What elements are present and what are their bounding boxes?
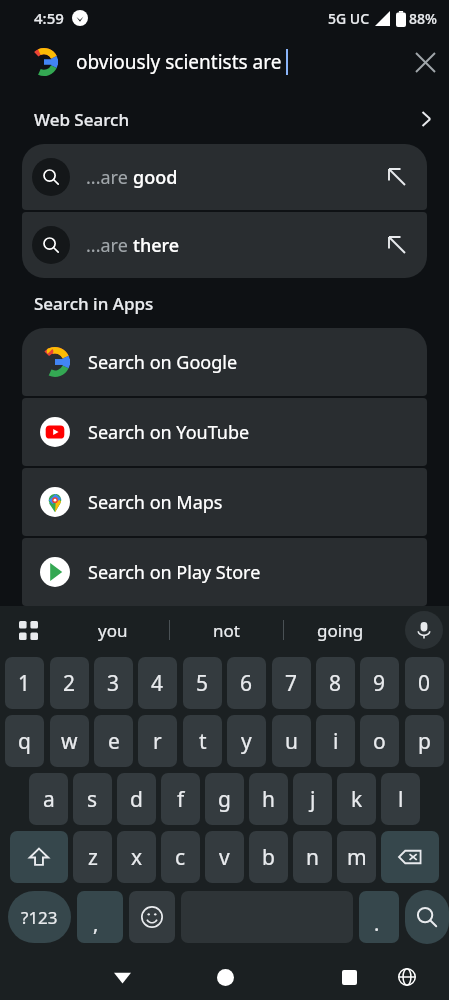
button[interactable]: Clear (401, 38, 449, 86)
staticText: i (333, 727, 339, 756)
button[interactable]: x (117, 831, 156, 883)
button[interactable]: Keyboard options (8, 610, 48, 650)
staticText: 9 (373, 669, 386, 698)
button[interactable]: you (56, 606, 169, 654)
button[interactable]: ...are (22, 212, 427, 278)
staticText: Search in Apps (34, 292, 154, 315)
button[interactable]: o (360, 715, 399, 767)
staticText: o (373, 727, 386, 756)
button[interactable]: n (293, 831, 332, 883)
button[interactable]: 6 (227, 657, 266, 709)
button[interactable]: g (205, 773, 244, 825)
button[interactable]: Search on Maps (22, 468, 427, 536)
staticText: 1 (18, 669, 31, 698)
button[interactable]: 2 (50, 657, 89, 709)
button[interactable]: k (337, 773, 376, 825)
button[interactable]: 0 (405, 657, 444, 709)
button[interactable]: p (405, 715, 444, 767)
staticText: good (133, 165, 178, 190)
staticText: t (199, 727, 207, 756)
button[interactable]: h (249, 773, 288, 825)
staticText: not (213, 619, 240, 642)
button[interactable]: t (183, 715, 222, 767)
staticText: 2 (63, 669, 76, 698)
button[interactable]: Voice input (405, 611, 443, 649)
staticText: g (218, 785, 231, 814)
staticText: n (306, 843, 319, 872)
button[interactable]: a (29, 773, 68, 825)
staticText: k (351, 785, 363, 814)
button[interactable]: Comma (77, 891, 123, 943)
staticText: m (347, 843, 367, 872)
button[interactable]: y (227, 715, 266, 767)
button[interactable]: Period (359, 891, 399, 943)
button[interactable]: not (170, 606, 283, 654)
button[interactable]: Recents (327, 955, 371, 999)
button[interactable]: 7 (272, 657, 311, 709)
button[interactable]: e (94, 715, 133, 767)
button[interactable]: Search on Play Store (22, 538, 427, 606)
button[interactable]: ?123 (8, 891, 71, 943)
staticText: 88% (409, 9, 437, 28)
staticText: y (241, 727, 252, 756)
staticText: Search on Maps (88, 490, 223, 515)
button[interactable]: s (73, 773, 112, 825)
staticText: 6 (240, 669, 253, 698)
button[interactable]: u (272, 715, 311, 767)
staticText: Web Search (34, 108, 130, 131)
button[interactable]: l (381, 773, 420, 825)
staticText: 4:59 (34, 8, 64, 28)
staticText: z (88, 843, 98, 872)
staticText: 4 (151, 669, 164, 698)
staticText: , (93, 910, 99, 937)
button[interactable]: Shift (10, 831, 68, 883)
button[interactable]: Emoji (129, 891, 175, 943)
button[interactable]: i (316, 715, 355, 767)
staticText: Search on Google (88, 350, 238, 375)
button[interactable]: j (293, 773, 332, 825)
staticText: 7 (285, 669, 298, 698)
button[interactable]: q (5, 715, 44, 767)
button[interactable]: w (50, 715, 89, 767)
staticText: j (310, 785, 316, 814)
button[interactable]: going (284, 606, 397, 654)
staticText: 0 (418, 669, 431, 698)
button[interactable]: r (138, 715, 177, 767)
button[interactable]: c (161, 831, 200, 883)
button[interactable]: 9 (360, 657, 399, 709)
button[interactable]: z (73, 831, 112, 883)
staticText: Search on Play Store (88, 560, 261, 585)
button[interactable]: Search on Google (22, 328, 427, 396)
staticText: b (262, 843, 275, 872)
button[interactable]: 3 (94, 657, 133, 709)
staticText: h (262, 785, 275, 814)
button[interactable]: 8 (316, 657, 355, 709)
staticText: you (98, 619, 128, 642)
button[interactable]: Search on YouTube (22, 398, 427, 466)
button[interactable]: f (161, 773, 200, 825)
button[interactable]: 1 (5, 657, 44, 709)
button[interactable]: ...are (22, 144, 427, 210)
button[interactable]: 5 (183, 657, 222, 709)
staticText: e (108, 727, 120, 756)
staticText: f (177, 785, 185, 814)
button[interactable]: Switch input method (385, 955, 429, 999)
button[interactable]: Backspace (381, 831, 439, 883)
button[interactable]: Back (100, 955, 144, 999)
button[interactable]: More web search (403, 96, 449, 142)
staticText: v (219, 843, 230, 872)
staticText: p (418, 727, 431, 756)
staticText: 5 (196, 669, 209, 698)
button[interactable]: d (117, 773, 156, 825)
button[interactable]: Search (405, 890, 449, 944)
button[interactable]: m (337, 831, 376, 883)
staticText: q (18, 727, 31, 756)
staticText: 8 (329, 669, 342, 698)
button[interactable]: b (249, 831, 288, 883)
button[interactable]: Home (203, 955, 247, 999)
button[interactable]: v (205, 831, 244, 883)
staticText: a (43, 785, 55, 814)
staticText: ...are (86, 165, 133, 190)
button[interactable]: 4 (138, 657, 177, 709)
